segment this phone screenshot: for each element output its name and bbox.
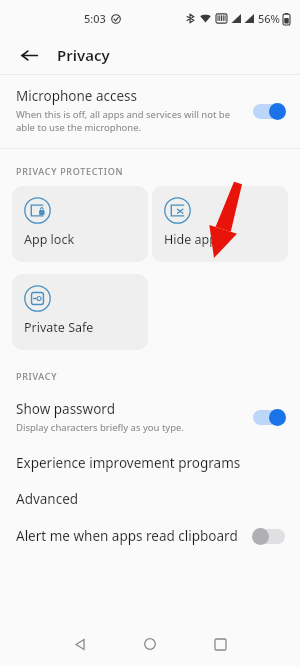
button[interactable]: Alert me when apps read clipboard [0,517,300,555]
button[interactable]: Advanced [0,481,300,517]
staticText: PRIVACY [16,370,58,382]
staticText: App lock [24,231,75,248]
button[interactable]: Microphone access [0,75,300,148]
staticText: Microphone access [16,87,138,105]
button[interactable]: Experience improvement programs [0,445,300,481]
staticText: 5:03 [84,11,106,26]
staticText: PRIVACY PROTECTION [16,165,124,177]
button[interactable]: Toggle on [252,102,286,120]
button[interactable]: Hide apps [152,186,288,262]
staticText: Advanced [16,490,79,508]
staticText: Experience improvement programs [16,454,241,472]
staticText: Privacy [57,45,110,65]
staticText: 56% [258,11,280,26]
button[interactable]: Recent apps [198,622,242,666]
staticText: Alert me when apps read clipboard [16,527,242,545]
button[interactable]: Toggle off [252,527,286,545]
button[interactable]: Private Safe [12,274,148,350]
button[interactable]: Toggle on [252,408,286,426]
button[interactable]: Back [16,42,42,68]
staticText: Private Safe [24,319,94,336]
staticText: Display characters briefly as you type. [16,421,184,434]
button[interactable]: Back [58,622,102,666]
button[interactable]: App lock [12,186,148,262]
staticText: Hide apps [164,231,223,248]
button[interactable]: Show password [0,390,300,445]
staticText: Show password [16,400,115,418]
staticText: When this is off, all apps and services … [16,108,242,134]
button[interactable]: Home [128,622,172,666]
